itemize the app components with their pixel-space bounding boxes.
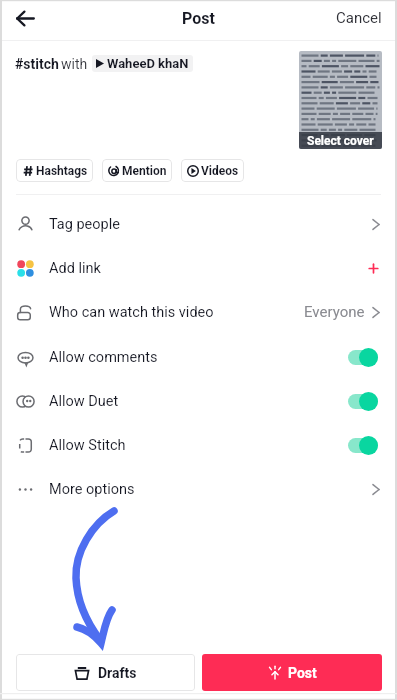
staticText: Tag people [49, 216, 120, 233]
staticText: WaheeD khaN [107, 56, 189, 71]
button[interactable]: Mention [102, 159, 172, 182]
staticText: #stitch [15, 56, 59, 72]
staticText: Allow comments [49, 349, 158, 366]
staticText: Post [182, 9, 215, 28]
button[interactable]: Videos [181, 159, 244, 182]
button[interactable]: Toggle [348, 436, 378, 455]
staticText: with [61, 56, 88, 72]
button[interactable]: Post [202, 654, 382, 691]
staticText: Videos [201, 164, 239, 178]
button[interactable]: Cancel [321, 9, 397, 27]
staticText: Who can watch this video [49, 304, 214, 321]
button[interactable]: Hashtags [16, 159, 93, 182]
staticText: Drafts [98, 665, 137, 681]
button[interactable]: Tag people [0, 202, 397, 246]
staticText: Add link [49, 260, 101, 277]
staticText: Allow Stitch [49, 437, 126, 454]
staticText: Post [288, 665, 317, 681]
button[interactable]: Who can watch this video [0, 290, 397, 334]
button[interactable]: WaheeD khaN [92, 55, 193, 72]
staticText: Hashtags [36, 164, 88, 178]
button[interactable]: Allow comments [0, 335, 397, 379]
button[interactable]: Toggle [348, 348, 378, 367]
button[interactable]: Allow Stitch [0, 423, 397, 467]
staticText: Mention [122, 164, 167, 178]
button[interactable]: Select cover [299, 51, 382, 149]
button[interactable]: More options [0, 467, 397, 511]
staticText: Allow Duet [49, 393, 119, 410]
staticText: Select cover [307, 134, 374, 148]
button[interactable]: Drafts [16, 654, 195, 691]
staticText: Everyone [304, 303, 365, 321]
button[interactable]: Toggle [348, 392, 378, 411]
button[interactable]: Allow Duet [0, 379, 397, 423]
staticText: More options [49, 481, 135, 498]
button[interactable]: Back [9, 2, 41, 34]
button[interactable]: Add link [0, 246, 397, 290]
